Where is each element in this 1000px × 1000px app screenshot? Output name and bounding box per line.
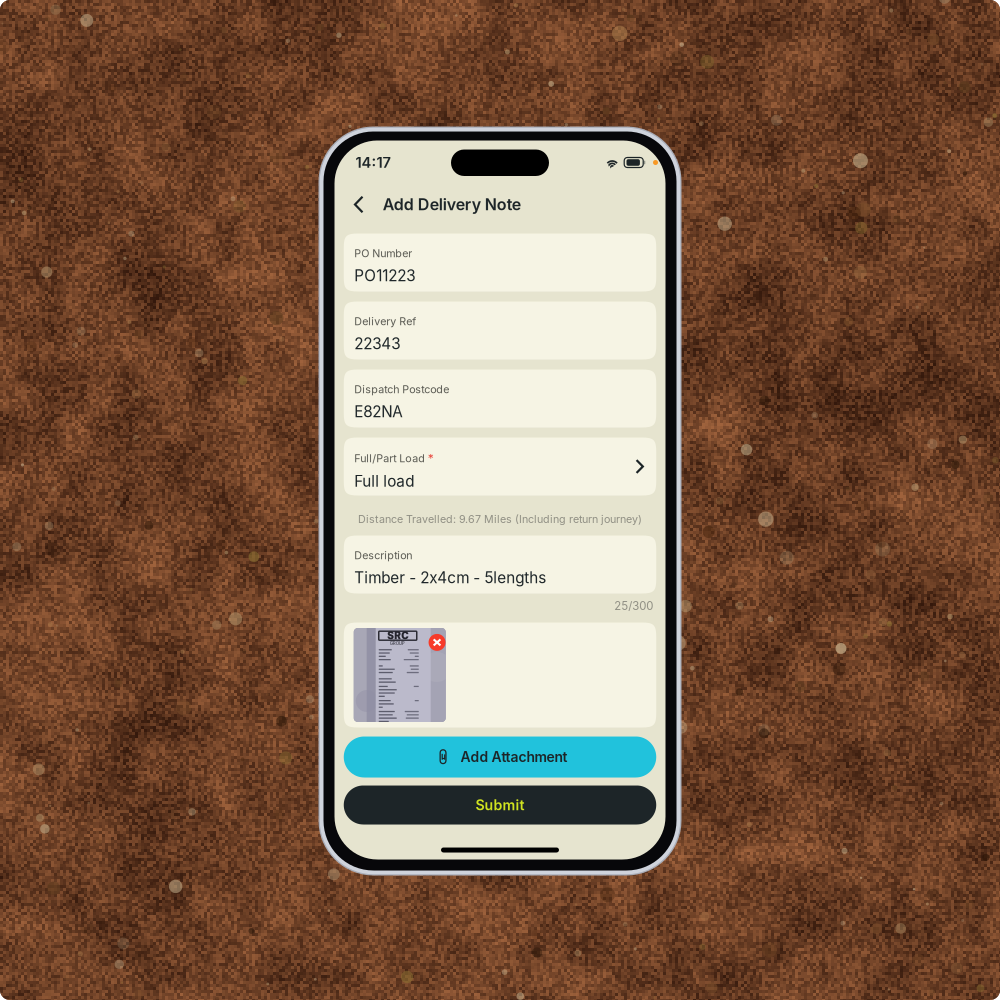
staticText: Distance Travelled: 9.67 Miles (Includin… (358, 512, 642, 525)
staticText: Delivery Ref (354, 315, 416, 328)
staticText: 22343 (354, 334, 400, 353)
staticText: Dispatch Postcode (354, 383, 449, 396)
staticText: Timber - 2x4cm - 5lengths (354, 568, 546, 587)
staticText: SRC (387, 630, 408, 642)
staticText: Full/Part Load (354, 452, 425, 465)
staticText: E82NA (354, 402, 402, 421)
button[interactable]: Full/Part Load (344, 437, 656, 495)
staticText: * (428, 451, 434, 465)
staticText: 25/300 (614, 599, 653, 613)
staticText: Add Attachment (461, 749, 568, 765)
staticText: GROUP (390, 641, 405, 646)
button[interactable]: Submit (344, 785, 656, 824)
button[interactable]: Add Attachment (344, 736, 656, 777)
staticText: 14:17 (355, 154, 390, 171)
button[interactable]: Back (334, 184, 383, 224)
button[interactable]: Remove attachment (426, 631, 448, 653)
staticText: PO11223 (354, 266, 415, 285)
staticText: Add Delivery Note (383, 195, 521, 214)
staticText: Full load (354, 472, 414, 490)
staticText: Submit (475, 796, 524, 813)
staticText: Description (354, 549, 412, 562)
staticText: PO Number (354, 247, 412, 260)
